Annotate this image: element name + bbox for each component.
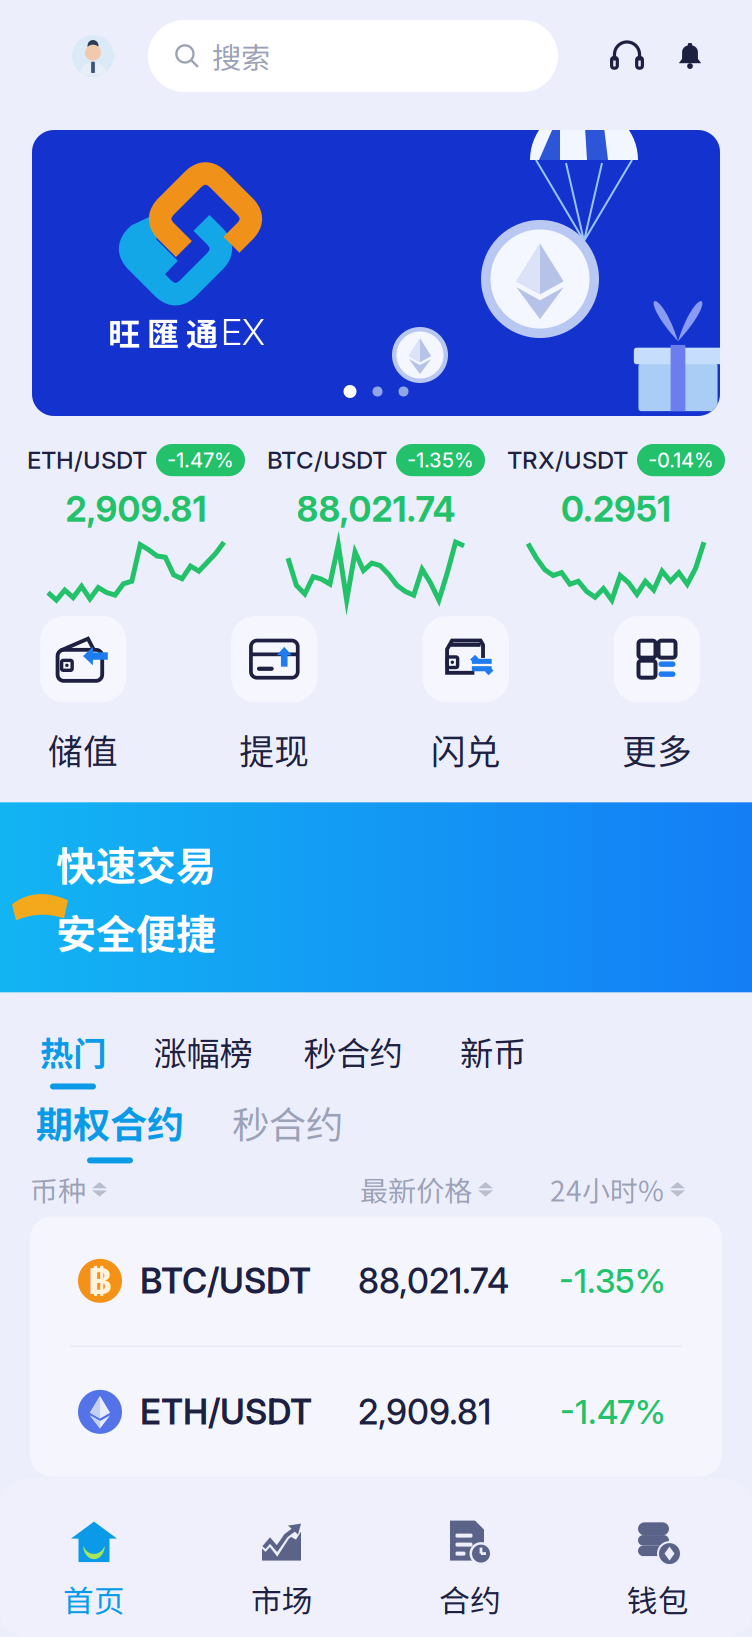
button[interactable]: 热门 bbox=[18, 1027, 128, 1089]
button[interactable]: BTC/USDT bbox=[256, 444, 496, 600]
staticText: 快速交易 bbox=[56, 834, 216, 892]
staticText: -0.14% bbox=[648, 448, 714, 472]
button[interactable]: 新币 bbox=[428, 1027, 558, 1089]
staticText: 搜索 bbox=[212, 35, 270, 77]
button[interactable]: 提现 bbox=[231, 616, 317, 774]
button[interactable]: 快速交易 bbox=[0, 802, 752, 992]
staticText: 储值 bbox=[48, 724, 118, 774]
staticText: 88,021.74 bbox=[296, 488, 455, 530]
staticText: -1.35% bbox=[407, 448, 474, 472]
staticText: 0.2951 bbox=[561, 488, 671, 530]
button[interactable]: 搜索 bbox=[148, 20, 558, 92]
staticText: BTC/USDT bbox=[267, 446, 387, 475]
staticText: ETH/USDT bbox=[27, 446, 147, 475]
staticText: 更多 bbox=[622, 724, 692, 774]
button[interactable]: Profile bbox=[72, 35, 114, 77]
button[interactable]: 秒合约 bbox=[278, 1027, 428, 1089]
staticText: 提现 bbox=[239, 724, 309, 774]
staticText: B bbox=[88, 1259, 111, 1303]
button[interactable]: 期权合约 bbox=[36, 1095, 184, 1163]
staticText: -1.47% bbox=[167, 448, 234, 472]
staticText: 期权合约 bbox=[36, 1095, 184, 1149]
staticText: 涨幅榜 bbox=[153, 1027, 252, 1075]
button[interactable]: 钱包 bbox=[564, 1517, 752, 1621]
button[interactable]: TRX/USDT bbox=[496, 444, 736, 600]
staticText: -1.35% bbox=[559, 1261, 666, 1301]
staticText: ETH/USDT bbox=[140, 1391, 312, 1433]
button[interactable]: 市场 bbox=[188, 1517, 376, 1621]
staticText: 安全便捷 bbox=[56, 902, 216, 960]
staticText: BTC/USDT bbox=[140, 1260, 311, 1302]
staticText: 合约 bbox=[439, 1577, 501, 1621]
staticText: 88,021.74 bbox=[358, 1260, 509, 1302]
button[interactable]: ETH/USDT bbox=[16, 444, 256, 600]
staticText: 市场 bbox=[251, 1577, 313, 1621]
staticText: 首页 bbox=[63, 1577, 125, 1621]
staticText: 新币 bbox=[460, 1027, 526, 1075]
button[interactable]: Notifications bbox=[672, 38, 708, 74]
staticText: 旺 匯 通 bbox=[108, 309, 218, 355]
staticText: 最新价格 bbox=[360, 1169, 472, 1210]
button[interactable]: ETH/USDT bbox=[30, 1347, 722, 1476]
button[interactable]: B bbox=[30, 1216, 722, 1345]
staticText: 24小时% bbox=[550, 1169, 664, 1210]
staticText: 闪兑 bbox=[431, 724, 501, 774]
staticText: EX bbox=[221, 310, 265, 354]
button[interactable]: Support bbox=[608, 37, 646, 75]
button[interactable]: 秒合约 bbox=[232, 1095, 343, 1163]
staticText: 秒合约 bbox=[232, 1095, 343, 1149]
staticText: 秒合约 bbox=[303, 1027, 402, 1075]
button[interactable]: 首页 bbox=[0, 1517, 188, 1621]
staticText: -1.47% bbox=[560, 1392, 666, 1432]
button[interactable]: 合约 bbox=[376, 1517, 564, 1621]
button[interactable]: 更多 bbox=[614, 616, 700, 774]
staticText: 2,909.81 bbox=[65, 488, 206, 530]
staticText: 2,909.81 bbox=[358, 1391, 491, 1433]
button[interactable]: 旺 匯 通 bbox=[32, 130, 720, 416]
staticText: 币种 bbox=[30, 1169, 86, 1210]
button[interactable]: 储值 bbox=[40, 616, 126, 774]
staticText: 热门 bbox=[40, 1027, 106, 1075]
button[interactable]: 涨幅榜 bbox=[128, 1027, 278, 1089]
staticText: 钱包 bbox=[627, 1577, 689, 1621]
staticText: TRX/USDT bbox=[507, 446, 628, 475]
button[interactable]: 闪兑 bbox=[423, 616, 509, 774]
